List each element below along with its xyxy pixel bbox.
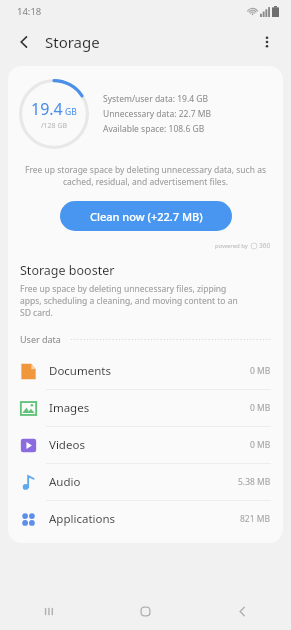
staticText: powered by: [215, 242, 248, 250]
staticText: System/user data: 19.4 GB: [103, 93, 208, 105]
staticText: 14:18: [17, 5, 42, 18]
staticText: GB: [65, 106, 77, 118]
button[interactable]: Videos: [8, 427, 283, 463]
button[interactable]: Images: [8, 390, 283, 426]
button[interactable]: Recent apps: [0, 592, 97, 630]
staticText: 0 MB: [250, 402, 271, 414]
staticText: Storage booster: [20, 262, 115, 279]
staticText: Applications: [49, 511, 116, 527]
button[interactable]: Audio: [8, 464, 283, 500]
staticText: 19.4: [31, 98, 63, 120]
button[interactable]: Clean now (+22.7 MB): [60, 201, 232, 231]
staticText: Free up storage space by deleting unnece…: [20, 164, 271, 188]
staticText: Videos: [49, 437, 85, 453]
staticText: User data: [20, 333, 61, 345]
staticText: Available space: 108.6 GB: [103, 123, 205, 135]
staticText: Free up space by deleting unnecessary fi…: [20, 283, 238, 319]
staticText: /128 GB: [41, 121, 68, 131]
button[interactable]: Back: [8, 26, 40, 58]
button[interactable]: Home: [97, 592, 194, 630]
button[interactable]: Documents: [8, 353, 283, 389]
staticText: Unnecessary data: 22.7 MB: [103, 108, 211, 120]
staticText: Audio: [49, 474, 81, 490]
staticText: Storage: [45, 32, 100, 52]
staticText: 0 MB: [250, 439, 271, 451]
staticText: 821 MB: [240, 513, 271, 525]
button[interactable]: Back: [194, 592, 291, 630]
staticText: Documents: [49, 363, 111, 379]
button[interactable]: Applications: [8, 501, 283, 537]
staticText: Images: [49, 400, 90, 416]
staticText: Clean now (+22.7 MB): [90, 209, 203, 224]
staticText: 360: [259, 241, 271, 250]
staticText: 0 MB: [250, 365, 271, 377]
button[interactable]: More options: [251, 26, 283, 58]
staticText: 5.38 MB: [238, 476, 271, 488]
